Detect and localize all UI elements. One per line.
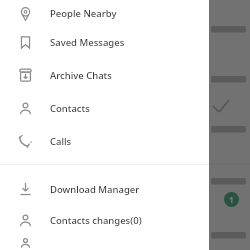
button[interactable]: Download Manager — [0, 174, 209, 205]
other: More — [0, 236, 50, 250]
button[interactable]: Calls — [0, 125, 209, 158]
staticText: Calls — [50, 135, 72, 148]
button[interactable]: People Nearby — [0, 0, 209, 26]
button[interactable]: More — [0, 236, 209, 250]
button[interactable]: Saved Messages — [0, 26, 209, 59]
button[interactable]: Archive Chats — [0, 59, 209, 92]
button[interactable]: Contacts changes(0) — [0, 205, 209, 236]
staticText: Contacts — [50, 102, 90, 115]
staticText: Archive Chats — [50, 69, 112, 82]
staticText: Saved Messages — [50, 36, 125, 49]
staticText: Contacts changes(0) — [50, 214, 142, 227]
staticText: Download Manager — [50, 183, 140, 196]
staticText: 1 — [229, 194, 234, 205]
staticText: People Nearby — [50, 7, 117, 20]
button[interactable]: Contacts — [0, 92, 209, 125]
